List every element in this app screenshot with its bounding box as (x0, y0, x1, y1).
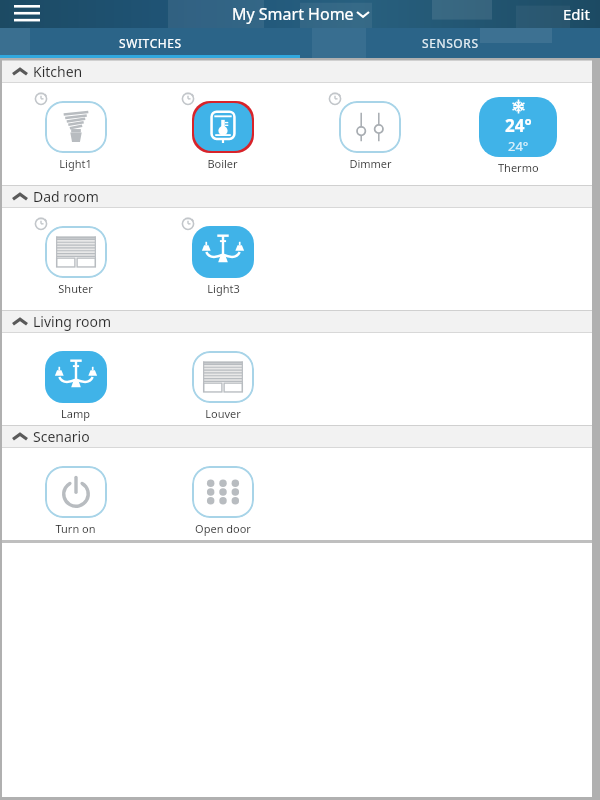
staticText: Thermo (498, 160, 539, 175)
button[interactable]: Light3 (149, 208, 297, 310)
staticText: SENSORS (422, 35, 479, 51)
button[interactable]: Edit (563, 4, 590, 24)
button[interactable]: Menu (10, 1, 44, 27)
staticText: Scenario (33, 427, 90, 446)
staticText: Lamp (61, 406, 90, 421)
staticText: Boiler (207, 156, 238, 171)
button[interactable]: Louver (149, 333, 297, 425)
staticText: Louver (205, 406, 241, 421)
button[interactable]: My Smart Home (232, 3, 369, 25)
staticText: Edit (563, 4, 590, 24)
button[interactable]: Turn on (2, 448, 149, 540)
button[interactable]: Boiler (149, 83, 296, 185)
button[interactable]: SWITCHES (0, 28, 300, 58)
staticText: Dimmer (349, 156, 392, 171)
staticText: 24° (508, 137, 529, 155)
button[interactable]: Light1 (2, 83, 149, 185)
button[interactable]: Shuter (2, 208, 149, 310)
staticText: SWITCHES (119, 35, 182, 51)
button[interactable]: Dad room (2, 185, 592, 208)
button[interactable]: SENSORS (300, 28, 600, 58)
button[interactable]: Kitchen (2, 60, 592, 83)
staticText: Turn on (55, 521, 96, 536)
button[interactable]: Scenario (2, 425, 592, 448)
button[interactable]: Dimmer (296, 83, 444, 185)
button[interactable]: Open door (149, 448, 297, 540)
button[interactable]: Lamp (2, 333, 149, 425)
button[interactable]: Living room (2, 310, 592, 333)
button[interactable]: 24° (444, 83, 592, 185)
staticText: Living room (33, 312, 112, 331)
staticText: Open door (195, 521, 251, 536)
staticText: Kitchen (33, 62, 83, 81)
staticText: My Smart Home (232, 3, 354, 25)
staticText: Dad room (33, 187, 99, 206)
staticText: Light1 (59, 156, 92, 171)
staticText: Shuter (58, 281, 93, 296)
staticText: Light3 (207, 281, 240, 296)
staticText: 24° (505, 114, 532, 137)
